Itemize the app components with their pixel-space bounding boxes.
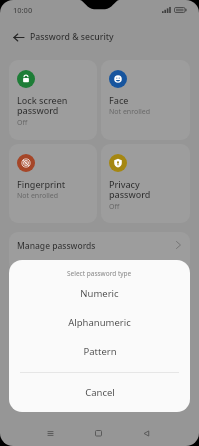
staticText: Numeric	[80, 287, 119, 300]
staticText: Password & security	[30, 31, 114, 43]
staticText: Pattern	[83, 345, 117, 358]
button[interactable]: Privacy password	[101, 144, 190, 223]
button[interactable]: Manage passwords	[9, 232, 190, 272]
button[interactable]: Lock screen password	[9, 60, 97, 140]
staticText: Not enrolled	[109, 107, 151, 117]
staticText: Off	[17, 118, 28, 128]
staticText: 10:00	[13, 5, 33, 15]
button[interactable]: Pattern	[9, 337, 190, 366]
staticText: Manage passwords	[17, 240, 96, 252]
staticText: Not enrolled	[17, 191, 59, 201]
button[interactable]: Fingerprint	[9, 144, 97, 223]
staticText: Face	[109, 94, 129, 106]
staticText: Lock screen password	[17, 94, 68, 117]
staticText: Alphanumeric	[68, 316, 131, 329]
button[interactable]: Home	[85, 420, 111, 446]
staticText: Fingerprint	[17, 178, 66, 190]
button[interactable]: Recent apps	[37, 420, 63, 446]
button[interactable]: Back	[133, 420, 159, 446]
staticText: Off	[109, 202, 120, 212]
staticText: Privacy password	[109, 178, 151, 201]
button[interactable]: Back	[8, 27, 28, 47]
button[interactable]: Face	[101, 60, 190, 140]
button[interactable]: Alphanumeric	[9, 308, 190, 337]
button[interactable]: Cancel	[9, 373, 190, 412]
button[interactable]: Numeric	[9, 279, 190, 308]
staticText: Cancel	[85, 386, 115, 399]
staticText: Select password type	[67, 269, 132, 278]
